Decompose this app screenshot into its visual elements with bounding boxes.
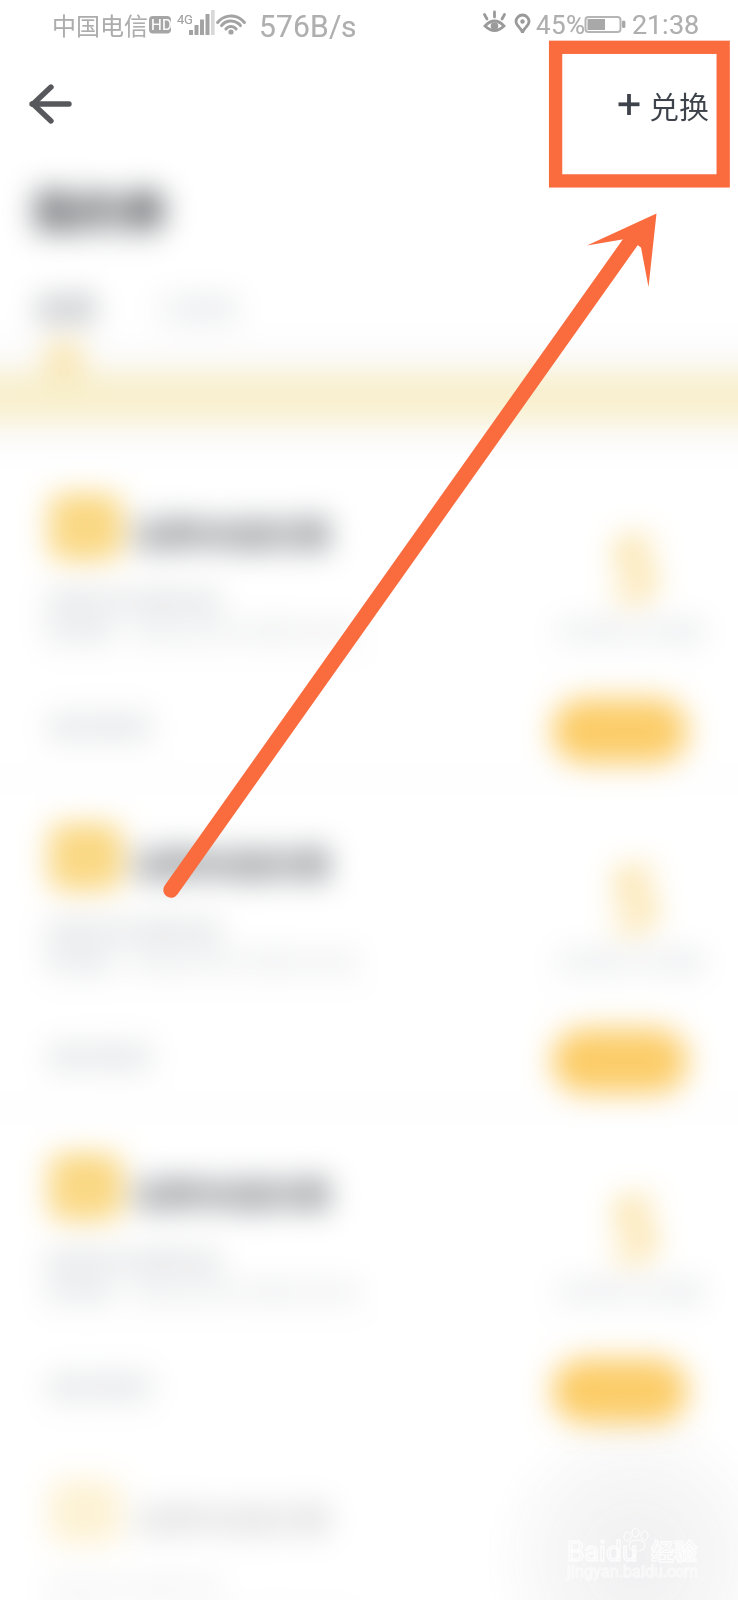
button[interactable]: 兑换 Exchange xyxy=(548,41,730,188)
button[interactable]: Back xyxy=(8,62,92,146)
